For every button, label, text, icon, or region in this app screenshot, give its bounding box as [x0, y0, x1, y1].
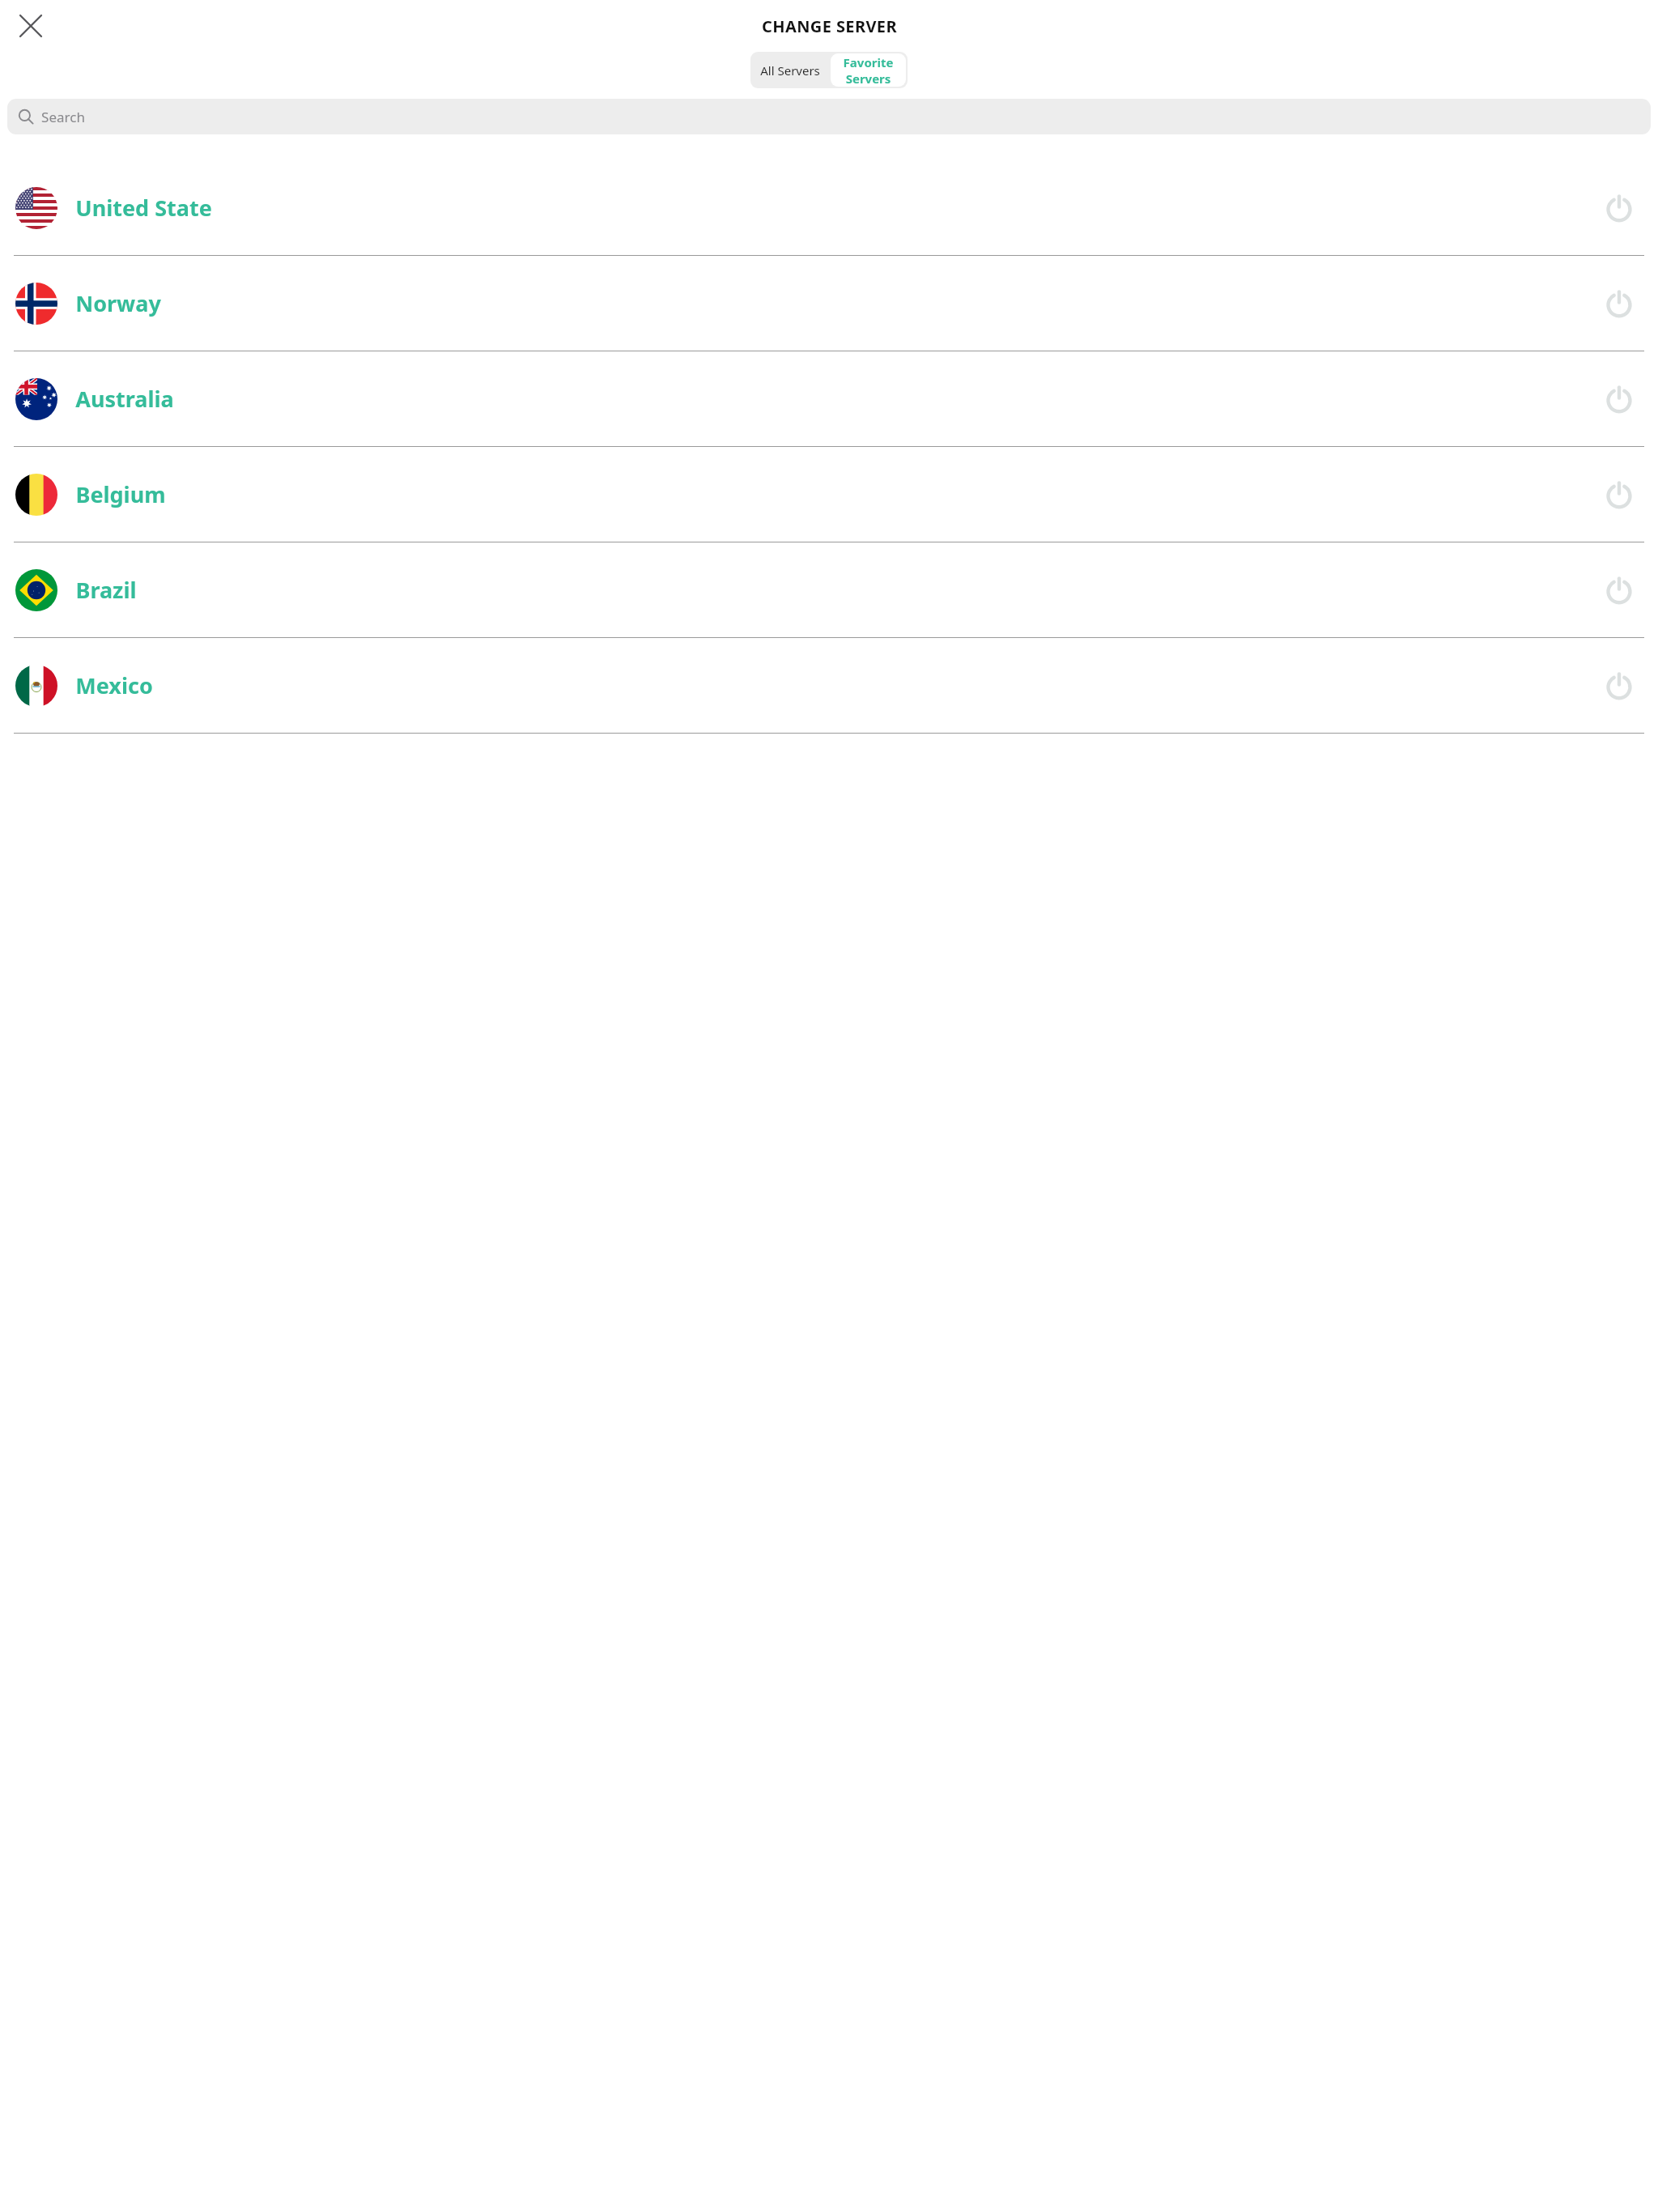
button[interactable]: United State [0, 160, 1658, 256]
button[interactable]: Norway [0, 256, 1658, 351]
button[interactable]: Favorite Servers [831, 53, 906, 87]
button[interactable]: Close [8, 3, 53, 49]
button[interactable]: Search [7, 99, 1651, 134]
staticText: Norway [75, 288, 161, 318]
button[interactable]: Mexico [0, 638, 1658, 734]
button[interactable]: Connect to Norway [1593, 278, 1645, 330]
button[interactable]: Connect to Brazil [1593, 564, 1645, 616]
staticText: Mexico [75, 670, 153, 700]
staticText: Belgium [75, 479, 166, 509]
button[interactable]: Connect to United State [1593, 182, 1645, 234]
staticText: CHANGE SERVER [762, 15, 897, 37]
staticText: Favorite Servers [831, 54, 906, 87]
staticText: Australia [75, 384, 174, 414]
button[interactable]: Brazil [0, 542, 1658, 638]
staticText: Brazil [75, 575, 137, 605]
staticText: Search [41, 108, 85, 126]
button[interactable]: Connect to Australia [1593, 373, 1645, 425]
staticText: United State [75, 193, 212, 223]
staticText: All Servers [760, 62, 820, 79]
button[interactable]: Connect to Mexico [1593, 660, 1645, 712]
button[interactable]: Australia [0, 351, 1658, 447]
button[interactable]: Connect to Belgium [1593, 469, 1645, 521]
button[interactable]: Belgium [0, 447, 1658, 542]
button[interactable]: All Servers [750, 52, 829, 88]
